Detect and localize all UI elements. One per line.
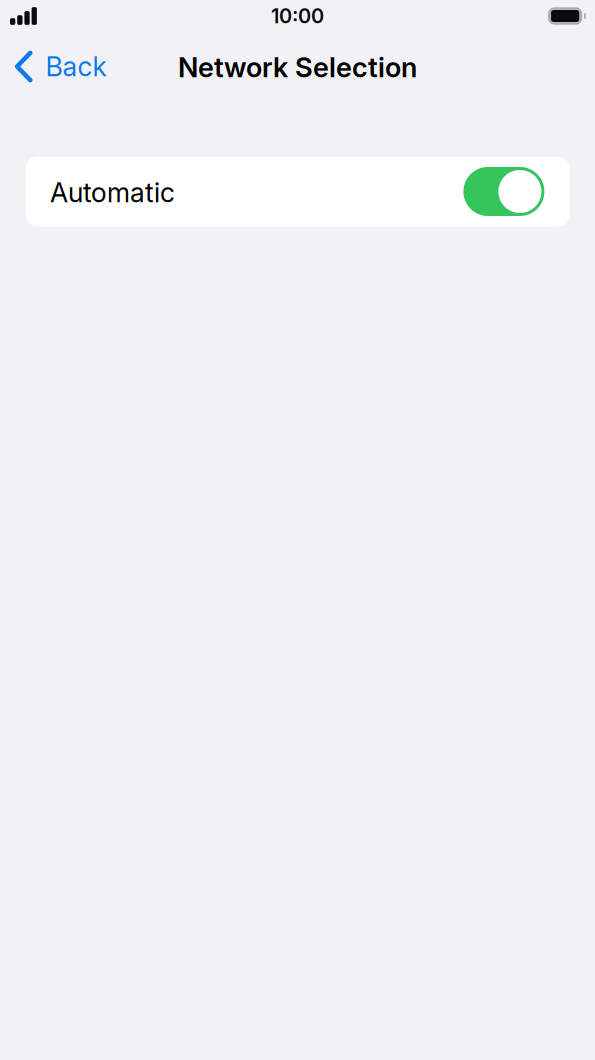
button[interactable]: Automatic bbox=[26, 156, 569, 226]
button[interactable]: Back bbox=[0, 39, 118, 93]
staticText: Network Selection bbox=[178, 51, 417, 84]
button[interactable]: On bbox=[463, 167, 544, 216]
staticText: Back bbox=[45, 50, 106, 83]
staticText: Automatic bbox=[50, 176, 175, 209]
staticText: 10:00 bbox=[271, 4, 324, 28]
